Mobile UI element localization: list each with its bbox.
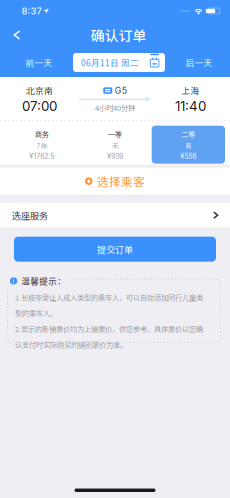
staticText: 型的乘车人。 — [15, 308, 57, 318]
staticText: 07:00 — [22, 98, 57, 114]
staticText: 选择乘客 — [97, 173, 145, 190]
staticText: ¥1762.5 — [29, 152, 54, 160]
button[interactable]: Back — [3, 24, 30, 45]
staticText: 上海 — [181, 84, 199, 96]
staticText: 后一天 — [185, 56, 212, 69]
staticText: ¥939 — [107, 152, 123, 160]
staticText: 2.显示的卧铺票价均为上铺票价，供您参考。具体票价以您确 — [15, 323, 203, 334]
button[interactable]: 后一天 — [173, 53, 225, 72]
staticText: 1.长按非受让人成人类型的乘车人，可以自动添加同行儿童类 — [15, 292, 203, 302]
button[interactable]: 选座服务 — [0, 203, 230, 228]
staticText: 二等 — [181, 129, 195, 139]
staticText: 温馨提示： — [21, 275, 66, 287]
staticText: 提交订单 — [97, 242, 133, 256]
staticText: 确认订单 — [90, 25, 146, 45]
button[interactable]: 06月11日 周二 — [73, 53, 165, 72]
staticText: 06月11日 周二 — [81, 56, 139, 69]
staticText: 8:37 — [21, 5, 41, 17]
staticText: 北京南 — [26, 84, 53, 96]
staticText: 一等 — [108, 129, 122, 139]
staticText: i — [13, 277, 15, 285]
staticText: 4小时40分钟 — [95, 102, 135, 113]
staticText: 7张 — [37, 141, 47, 150]
staticText: G5 — [115, 85, 127, 96]
staticText: 商务 — [35, 129, 49, 139]
button[interactable]: 商务 — [5, 126, 78, 164]
button[interactable]: 一等 — [78, 126, 152, 164]
button[interactable]: 提交订单 — [14, 237, 216, 262]
button[interactable]: 二等 — [152, 126, 225, 164]
button[interactable]: 前一天 — [13, 53, 65, 72]
staticText: 无 — [112, 141, 118, 150]
staticText: 认支付时实际购买的铺别票价为准。 — [15, 339, 127, 350]
staticText: 选座服务 — [12, 209, 48, 222]
staticText: ¥558 — [180, 152, 196, 160]
staticText: 11:40 — [175, 98, 206, 114]
staticText: 有 — [185, 141, 191, 150]
staticText: 前一天 — [25, 56, 52, 69]
button[interactable]: 选择乘客 — [0, 168, 230, 195]
